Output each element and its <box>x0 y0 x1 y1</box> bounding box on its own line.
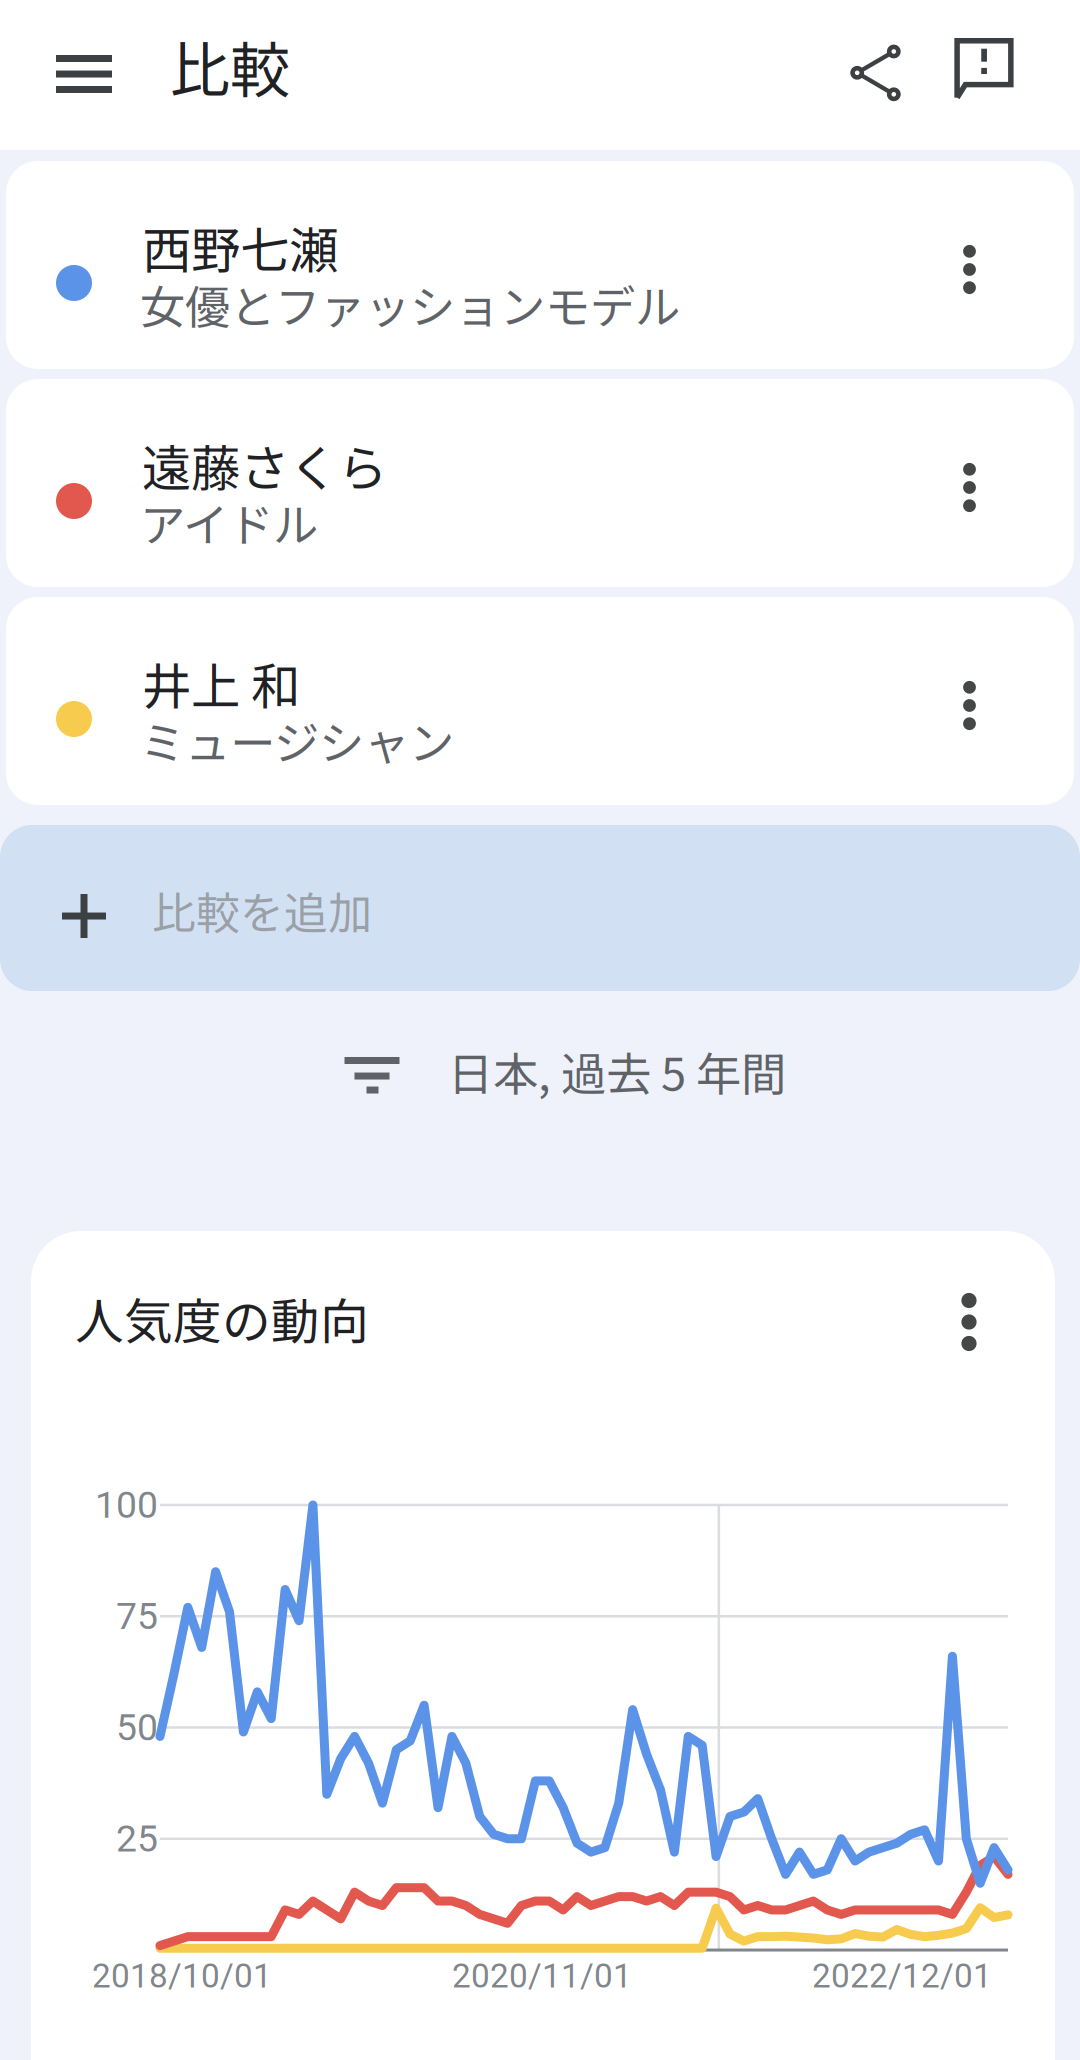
staticText: 75 <box>116 1594 158 1638</box>
button[interactable]: 日本, 過去 5 年間 <box>343 1005 963 1145</box>
staticText: 遠藤さくら <box>142 429 387 501</box>
staticText: 50 <box>116 1706 158 1749</box>
staticText: 比較 <box>170 23 290 109</box>
staticText: 人気度の動向 <box>75 1283 369 1353</box>
button[interactable]: Menu <box>0 0 168 150</box>
staticText: アイドル <box>140 489 318 555</box>
button[interactable]: 遠藤さくら <box>6 379 1074 587</box>
button[interactable]: 西野七瀬 <box>6 161 1074 369</box>
staticText: 女優とファッションモデル <box>140 271 680 337</box>
staticText: ミュージシャン <box>140 707 454 773</box>
staticText: 2022/12/01 <box>812 1956 992 1996</box>
button[interactable]: Chart options <box>911 1251 1031 1351</box>
staticText: 日本, 過去 5 年間 <box>448 1038 786 1104</box>
button[interactable]: Send feedback <box>951 12 1079 138</box>
staticText: 100 <box>95 1483 158 1527</box>
button[interactable]: 比較を追加 <box>0 825 1080 991</box>
staticText: 西野七瀬 <box>142 211 338 283</box>
button[interactable]: 井上 和 <box>6 597 1074 805</box>
staticText: 比較を追加 <box>152 878 372 942</box>
staticText: 井上 和 <box>142 647 300 719</box>
staticText: 2018/10/01 <box>92 1956 272 1996</box>
staticText: 2020/11/01 <box>452 1956 632 1996</box>
staticText: 25 <box>116 1817 158 1861</box>
button[interactable]: Share <box>818 12 946 138</box>
